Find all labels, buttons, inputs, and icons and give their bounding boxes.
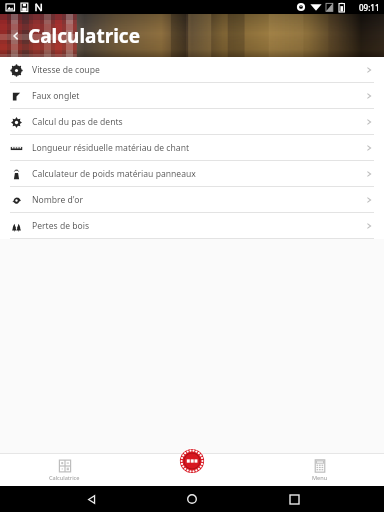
button[interactable]: Calculateur de poids matériau panneaux [0,161,384,187]
button[interactable]: Calculatrice [0,454,128,486]
staticText: Calculatrice [28,23,141,49]
staticText: Calculatrice [49,474,80,482]
staticText: 09:11 [359,2,380,13]
staticText: Faux onglet [32,90,364,102]
button[interactable]: Retour [8,28,24,44]
button[interactable]: Retour [80,488,102,510]
staticText: Menu [312,474,328,482]
button[interactable]: Faux onglet [0,83,384,109]
staticText: Calcul du pas de dents [32,116,364,128]
button[interactable]: Pertes de bois [0,213,384,239]
button[interactable]: Accueil [181,488,203,510]
staticText: Pertes de bois [32,220,364,232]
button[interactable]: Applications récentes [283,488,305,510]
button[interactable]: Nombre d'or [0,187,384,213]
staticText: Nombre d'or [32,194,364,206]
staticText: Vitesse de coupe [32,64,364,76]
button[interactable]: Calcul du pas de dents [0,109,384,135]
staticText: Longueur résiduelle matériau de chant [32,142,364,154]
button[interactable]: Longueur résiduelle matériau de chant [0,135,384,161]
button[interactable]: Logo Felder [179,448,205,474]
button[interactable]: Menu [256,454,384,486]
staticText: Calculateur de poids matériau panneaux [32,168,364,180]
button[interactable]: Vitesse de coupe [0,57,384,83]
